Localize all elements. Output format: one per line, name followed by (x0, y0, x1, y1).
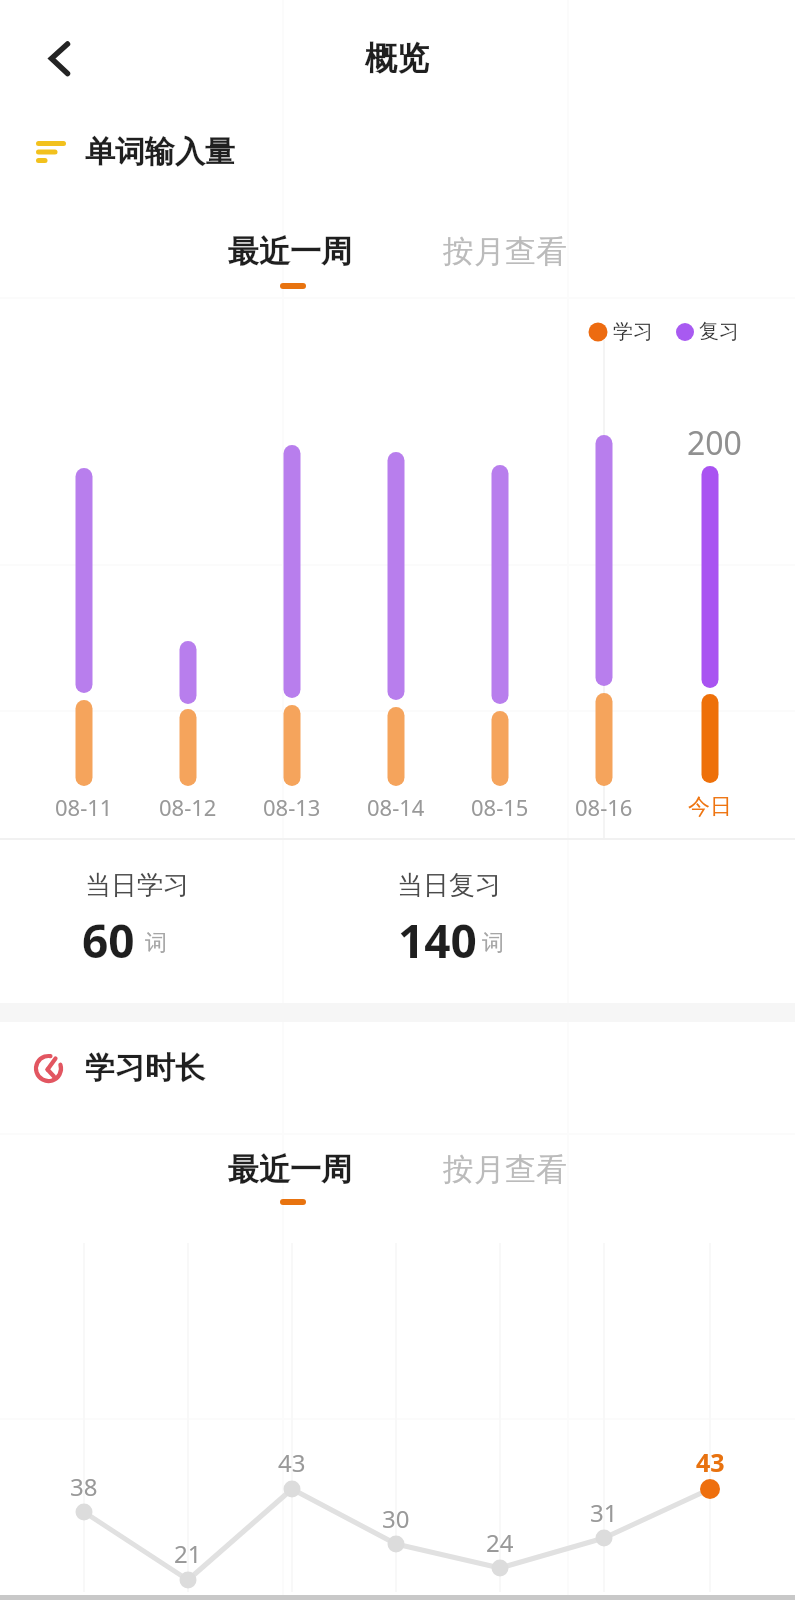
staticText: 200 (687, 421, 742, 465)
staticText: 08-16 (575, 792, 633, 822)
button[interactable]: 按月查看 (395, 1137, 615, 1201)
staticText: 140 (398, 909, 477, 972)
staticText: 复习 (699, 319, 739, 344)
staticText: 60 (82, 909, 135, 972)
staticText: 30 (382, 1502, 410, 1535)
staticText: 按月查看 (443, 1150, 567, 1189)
staticText: 词 (482, 929, 504, 957)
staticText: 词 (145, 929, 167, 957)
button[interactable]: 最近一周 (180, 1137, 400, 1201)
staticText: 最近一周 (228, 1150, 352, 1189)
staticText: 08-11 (55, 792, 113, 822)
staticText: 按月查看 (443, 232, 567, 271)
staticText: 学习时长 (85, 1049, 205, 1087)
staticText: 31 (590, 1496, 618, 1529)
staticText: 最近一周 (228, 232, 352, 271)
staticText: 38 (70, 1470, 98, 1503)
staticText: 43 (278, 1446, 306, 1479)
staticText: 概览 (365, 38, 429, 78)
button[interactable] (30, 28, 90, 88)
staticText: 08-13 (263, 792, 321, 822)
button[interactable]: 最近一周 (180, 219, 400, 283)
staticText: 今日 (688, 793, 732, 821)
staticText: 08-15 (471, 792, 529, 822)
button[interactable]: 按月查看 (395, 219, 615, 283)
staticText: 08-12 (159, 792, 217, 822)
staticText: 21 (174, 1537, 202, 1570)
staticText: 43 (696, 1445, 725, 1479)
staticText: 当日学习 (85, 869, 189, 902)
staticText: 学习 (613, 319, 653, 344)
staticText: 当日复习 (397, 869, 501, 902)
staticText: 24 (486, 1526, 514, 1559)
staticText: 08-14 (367, 792, 425, 822)
staticText: 单词输入量 (85, 133, 235, 171)
